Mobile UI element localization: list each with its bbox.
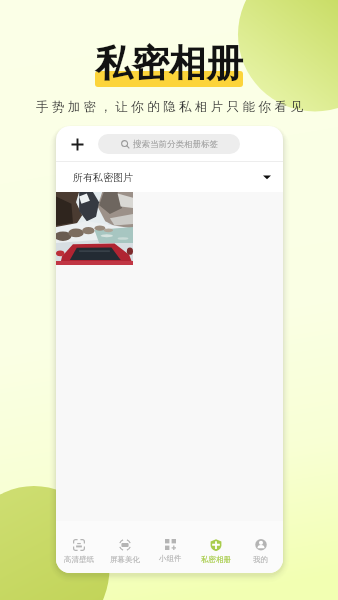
button[interactable]: 屏幕美化 <box>102 521 148 573</box>
staticText: 手势加密，让你的隐私相片只能你看见 <box>2 99 338 115</box>
button[interactable]: 我的 <box>238 521 283 573</box>
staticText: 高清壁纸 <box>64 555 94 564</box>
staticText: 我的 <box>253 555 268 564</box>
staticText: 私密相册 <box>0 40 338 87</box>
staticText: 屏幕美化 <box>110 555 140 564</box>
button[interactable]: 高清壁纸 <box>56 521 102 573</box>
button[interactable]: 小组件 <box>148 521 193 573</box>
staticText: 所有私密图片 <box>73 171 133 184</box>
button[interactable]: 私密相册 <box>193 521 238 573</box>
staticText: 私密相册 <box>201 555 231 564</box>
button[interactable] <box>56 192 133 265</box>
button[interactable]: 所有私密图片 <box>56 162 283 192</box>
staticText: 搜索当前分类相册标签 <box>133 139 218 150</box>
button[interactable]: Add album <box>56 127 98 161</box>
button[interactable]: 搜索当前分类相册标签 <box>98 134 240 154</box>
staticText: 小组件 <box>159 554 182 563</box>
